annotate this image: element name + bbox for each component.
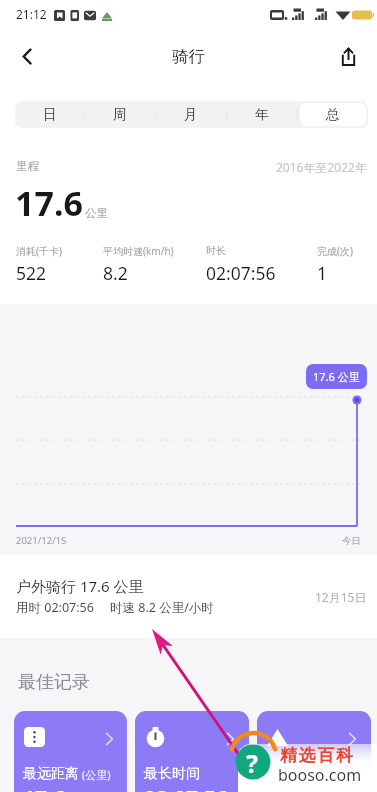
staticText: 户外骑行 17.6 公里 <box>16 576 144 596</box>
staticText: 年 <box>255 106 269 123</box>
staticText: (公里) <box>79 767 111 782</box>
staticText: booso.com <box>278 764 362 786</box>
staticText: 2021/12/15 <box>16 534 67 547</box>
staticText: 1 <box>317 261 328 285</box>
staticText: 完成(次) <box>317 244 353 258</box>
button[interactable]: 最远距离 <box>14 711 127 792</box>
button[interactable]: 日 <box>17 103 82 126</box>
staticText: 骑行 <box>172 46 205 67</box>
button[interactable]: 月 <box>158 103 224 126</box>
staticText: 今日 <box>342 535 361 547</box>
staticText: 里程 <box>16 159 39 173</box>
button[interactable]: 最长时间 <box>135 711 249 792</box>
staticText: 02:07:56 <box>144 784 228 792</box>
staticText: 02:07:56 <box>206 261 276 285</box>
staticText: 日 <box>43 106 57 123</box>
staticText: 最远距离 <box>23 765 79 783</box>
staticText: 12月15日 <box>315 589 367 605</box>
staticText: 时长 <box>206 244 226 257</box>
button[interactable]: 最高海拔 <box>257 711 371 792</box>
staticText: 平均时速(km/h) <box>103 244 174 258</box>
staticText: 月 <box>184 106 198 123</box>
staticText: 8.2 <box>103 261 128 285</box>
staticText: ? <box>246 746 258 780</box>
staticText: 17.6 <box>23 784 65 792</box>
staticText: 公里 <box>85 206 108 220</box>
button[interactable]: 总 <box>300 103 366 126</box>
staticText: 17.6 公里 <box>313 369 360 384</box>
button[interactable]: 周 <box>87 103 153 126</box>
staticText: 精选百科 <box>280 745 355 766</box>
staticText: 时速 8.2 公里/小时 <box>110 599 214 616</box>
staticText: 21:12 <box>16 6 47 22</box>
staticText: 522 <box>16 261 47 285</box>
button[interactable]: 年 <box>229 103 295 126</box>
button[interactable]: Back <box>6 35 48 77</box>
staticText: 最高海拔 <box>266 765 322 783</box>
button[interactable]: Share <box>327 35 369 77</box>
staticText: 2016年至2022年 <box>276 159 367 175</box>
staticText: 消耗(千卡) <box>16 244 62 258</box>
staticText: 17.6 <box>15 180 83 226</box>
staticText: 周 <box>113 106 127 123</box>
staticText: 最佳记录 <box>18 671 90 694</box>
staticText: 最长时间 <box>144 765 200 783</box>
staticText: 用时 02:07:56 <box>16 599 94 616</box>
staticText: 总 <box>326 106 340 123</box>
button[interactable]: 户外骑行 17.6 公里 <box>0 555 377 638</box>
